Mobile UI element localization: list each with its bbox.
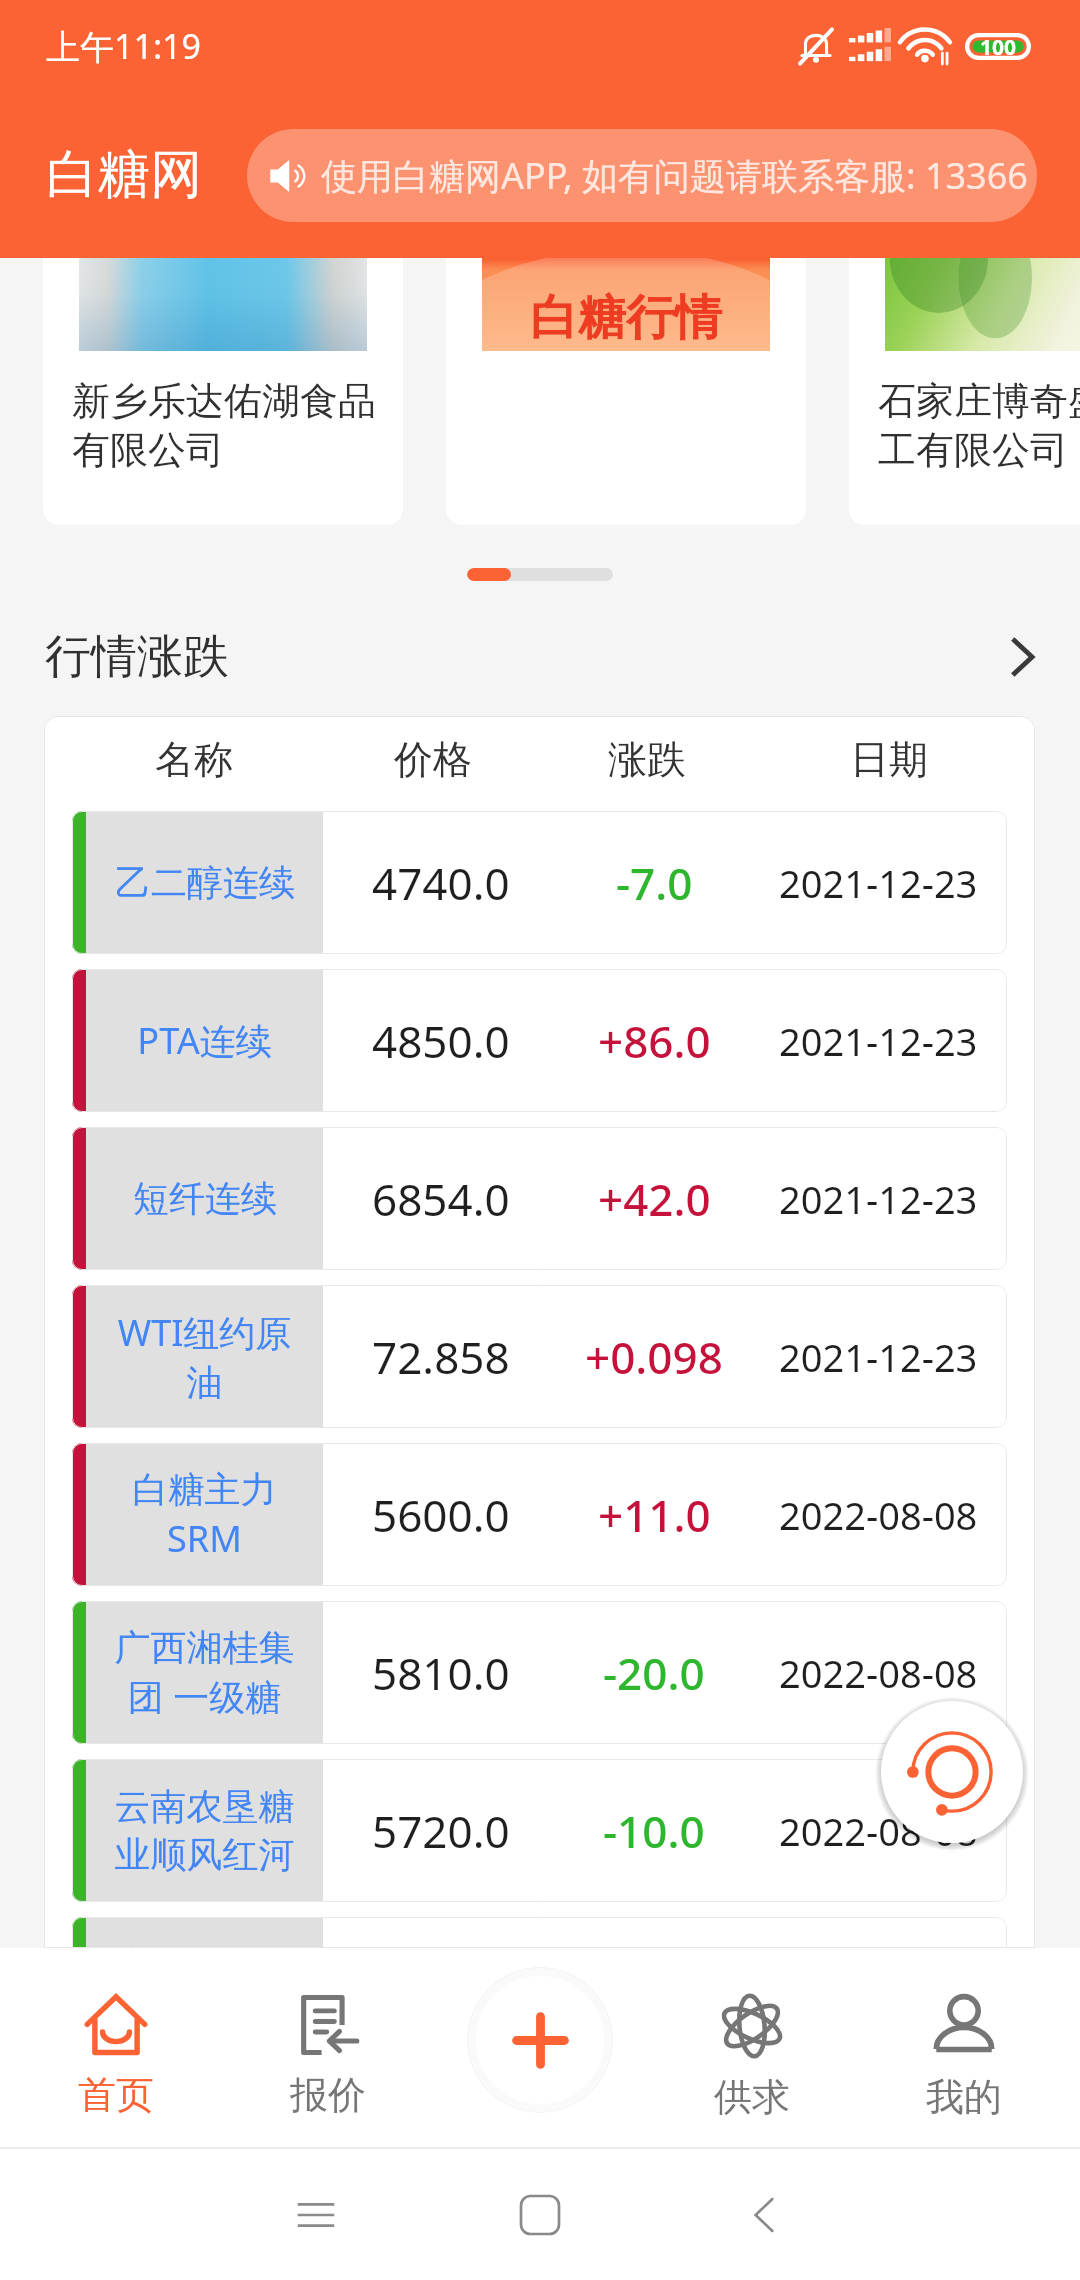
staticText: 行情涨跌 (45, 628, 229, 686)
button[interactable]: 在线客服 (879, 1699, 1025, 1845)
button[interactable]: 广西凤糖生化 (44, 1909, 1035, 1948)
staticText: 5600.0 (372, 1485, 510, 1545)
staticText: 上午11:19 (46, 23, 201, 69)
button[interactable]: 白糖网 (0, 142, 202, 208)
staticText: PTA连续 (137, 1016, 272, 1065)
button[interactable]: 广西湘桂集团 一级糖 (44, 1593, 1035, 1751)
staticText: 5810.0 (372, 1643, 510, 1703)
button[interactable]: 使用白糖网APP, 如有问题请联系客服: 13366 (247, 129, 1037, 222)
staticText: 短纤连续 (133, 1176, 277, 1221)
staticText: +11.0 (598, 1485, 711, 1545)
button[interactable]: 短纤连续 (44, 1119, 1035, 1277)
staticText: 2021-12-23 (779, 1331, 978, 1383)
button[interactable]: 新乡乐达佑湖食品有限公司 (43, 258, 403, 525)
staticText: 2022-08-08 (779, 1805, 978, 1857)
button[interactable]: Home (501, 2176, 579, 2254)
staticText: 100 (980, 33, 1017, 60)
staticText: +86.0 (598, 1011, 711, 1071)
button[interactable]: 发布 (467, 1967, 613, 2113)
staticText: -10.0 (603, 1801, 705, 1861)
staticText: 云南农垦糖业顺风红河 (111, 1784, 298, 1878)
button[interactable]: PTA连续 (44, 961, 1035, 1119)
staticText: 5720.0 (372, 1801, 510, 1861)
staticText: +0.098 (585, 1327, 723, 1387)
staticText: 2021-12-23 (779, 1015, 978, 1067)
staticText: -7.0 (616, 853, 693, 913)
staticText: 报价 (290, 2071, 366, 2119)
button[interactable]: 首页 (10, 1948, 222, 2147)
staticText: 2021-12-23 (779, 857, 978, 909)
staticText: 涨跌 (608, 735, 686, 784)
staticText: 72.858 (372, 1327, 510, 1387)
staticText: 日期 (850, 735, 928, 784)
button[interactable]: 我的 (858, 1948, 1070, 2147)
staticText: 名称 (155, 735, 233, 784)
staticText: 新乡乐达佑湖食品有限公司 (72, 377, 391, 474)
button[interactable]: WTI纽约原油 (44, 1277, 1035, 1435)
button[interactable]: 白糖行情 (446, 258, 806, 525)
staticText: 白糖行情 (530, 288, 722, 348)
staticText: WTI纽约原油 (111, 1308, 298, 1406)
staticText: 乙二醇连续 (115, 860, 295, 905)
button[interactable]: Recents (277, 2176, 355, 2254)
staticText: 4850.0 (372, 1011, 510, 1071)
staticText: 2022-08-08 (779, 1647, 978, 1699)
button[interactable]: 云南农垦糖业顺风红河 (44, 1751, 1035, 1909)
button[interactable]: 行情涨跌 (0, 610, 1080, 703)
staticText: 价格 (394, 735, 472, 784)
staticText: 广西湘桂集团 一级糖 (111, 1625, 298, 1720)
staticText: 2022-08-08 (779, 1489, 978, 1541)
staticText: 白糖主力SRM (111, 1467, 298, 1562)
staticText: 我的 (926, 2073, 1002, 2121)
staticText: 6854.0 (372, 1169, 510, 1229)
button[interactable]: Back (725, 2176, 803, 2254)
staticText: 供求 (714, 2073, 790, 2121)
button[interactable]: 白糖主力SRM (44, 1435, 1035, 1593)
staticText: 2021-12-23 (779, 1173, 978, 1225)
button[interactable]: 石家庄博奇盛化 工有限公司 (849, 258, 1080, 525)
staticText: 石家庄博奇盛化 工有限公司 (878, 377, 1080, 474)
button[interactable]: 报价 (222, 1948, 434, 2147)
staticText: 首页 (78, 2071, 154, 2119)
staticText: 4740.0 (372, 853, 510, 913)
staticText: +42.0 (598, 1169, 711, 1229)
staticText: 使用白糖网APP, 如有问题请联系客服: 13366 (321, 151, 1028, 200)
staticText: -20.0 (603, 1643, 705, 1703)
button[interactable]: 供求 (646, 1948, 858, 2147)
button[interactable]: 乙二醇连续 (44, 803, 1035, 961)
